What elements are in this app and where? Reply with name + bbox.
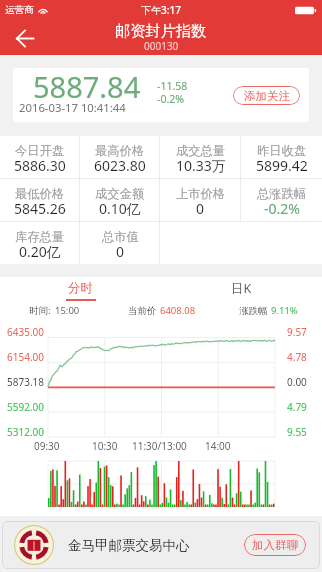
staticText: 6154.00 [7, 350, 44, 364]
staticText: 最高价格 [95, 143, 145, 158]
staticText: 6408.08 [160, 304, 196, 317]
staticText: -0.2% [264, 199, 300, 218]
staticText: 000130 [144, 39, 179, 53]
button[interactable]: Back [8, 21, 42, 55]
staticText: 4.78 [287, 350, 307, 364]
staticText: 6435.00 [7, 325, 44, 339]
staticText: -11.58 [157, 79, 188, 93]
staticText: 14:00 [205, 439, 231, 453]
staticText: 15:00 [55, 304, 80, 317]
staticText: 10:30 [92, 439, 118, 453]
staticText: 09:30 [34, 439, 60, 453]
staticText: 成交金额 [95, 186, 145, 201]
staticText: 日K [231, 280, 252, 297]
staticText: 11:30/13:00 [132, 439, 187, 453]
staticText: 9.55 [287, 425, 307, 439]
staticText: 5899.42 [256, 156, 308, 175]
staticText: 0 [116, 242, 125, 261]
staticText: 金马甲邮票交易中心 [68, 537, 190, 554]
button[interactable]: 分时 [0, 277, 161, 303]
staticText: 昨日收盘 [257, 143, 307, 158]
staticText: 加入群聊 [252, 538, 298, 552]
staticText: 5592.00 [7, 400, 44, 414]
staticText: 时间: [29, 304, 51, 317]
staticText: 5873.18 [7, 375, 44, 389]
staticText: 4.79 [287, 400, 307, 414]
staticText: 上市价格 [176, 186, 226, 201]
button[interactable]: 添加关注 [233, 86, 300, 105]
staticText: 0 [196, 199, 205, 218]
staticText: 5887.84 [33, 68, 141, 106]
button[interactable]: 日K [161, 277, 322, 303]
staticText: 添加关注 [244, 89, 290, 103]
staticText: 总涨跌幅 [257, 186, 307, 201]
button[interactable]: 金马甲邮票交易中心 [2, 521, 320, 569]
staticText: 库存总量 [15, 229, 65, 244]
staticText: 今日开盘 [15, 143, 65, 158]
staticText: 5845.26 [14, 199, 66, 218]
staticText: 0.20亿 [19, 242, 61, 261]
staticText: 0.00 [287, 375, 307, 389]
button[interactable]: 加入群聊 [244, 534, 306, 556]
staticText: 6023.80 [94, 156, 146, 175]
staticText: 下午3:17 [141, 3, 181, 17]
staticText: 邮资封片指数 [115, 21, 207, 40]
staticText: 9.57 [287, 325, 307, 339]
staticText: -0.2% [157, 92, 184, 106]
staticText: 涨跌幅 [239, 305, 268, 317]
staticText: 运营商 [5, 4, 34, 16]
staticText: 10.33万 [176, 156, 226, 175]
staticText: 5312.00 [7, 425, 44, 439]
staticText: 成交总量 [176, 143, 226, 158]
staticText: 分时 [68, 280, 93, 296]
staticText: 最低价格 [15, 186, 65, 201]
staticText: 0.10亿 [99, 199, 141, 218]
button[interactable]: 5887.84 [13, 68, 309, 122]
staticText: 9.11% [271, 304, 298, 317]
staticText: 5886.30 [14, 156, 66, 175]
staticText: 2016-03-17 10:41:44 [19, 100, 126, 115]
staticText: 当前价 [128, 305, 157, 317]
staticText: 总市值 [102, 229, 139, 244]
